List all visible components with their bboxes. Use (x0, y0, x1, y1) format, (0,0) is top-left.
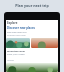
button[interactable] (31, 38, 58, 48)
staticText: Find trips near you (7, 31, 27, 34)
button[interactable] (6, 38, 30, 48)
staticText: Explore (7, 21, 18, 25)
button[interactable] (6, 63, 58, 72)
staticText: Nearby (7, 59, 15, 62)
staticText: Plan your next trip (15, 3, 49, 8)
staticText: Popular right now (7, 34, 26, 37)
staticText: From $120 / night (7, 53, 25, 56)
staticText: Discover new places (7, 26, 36, 30)
staticText: Mountain view (7, 49, 25, 52)
